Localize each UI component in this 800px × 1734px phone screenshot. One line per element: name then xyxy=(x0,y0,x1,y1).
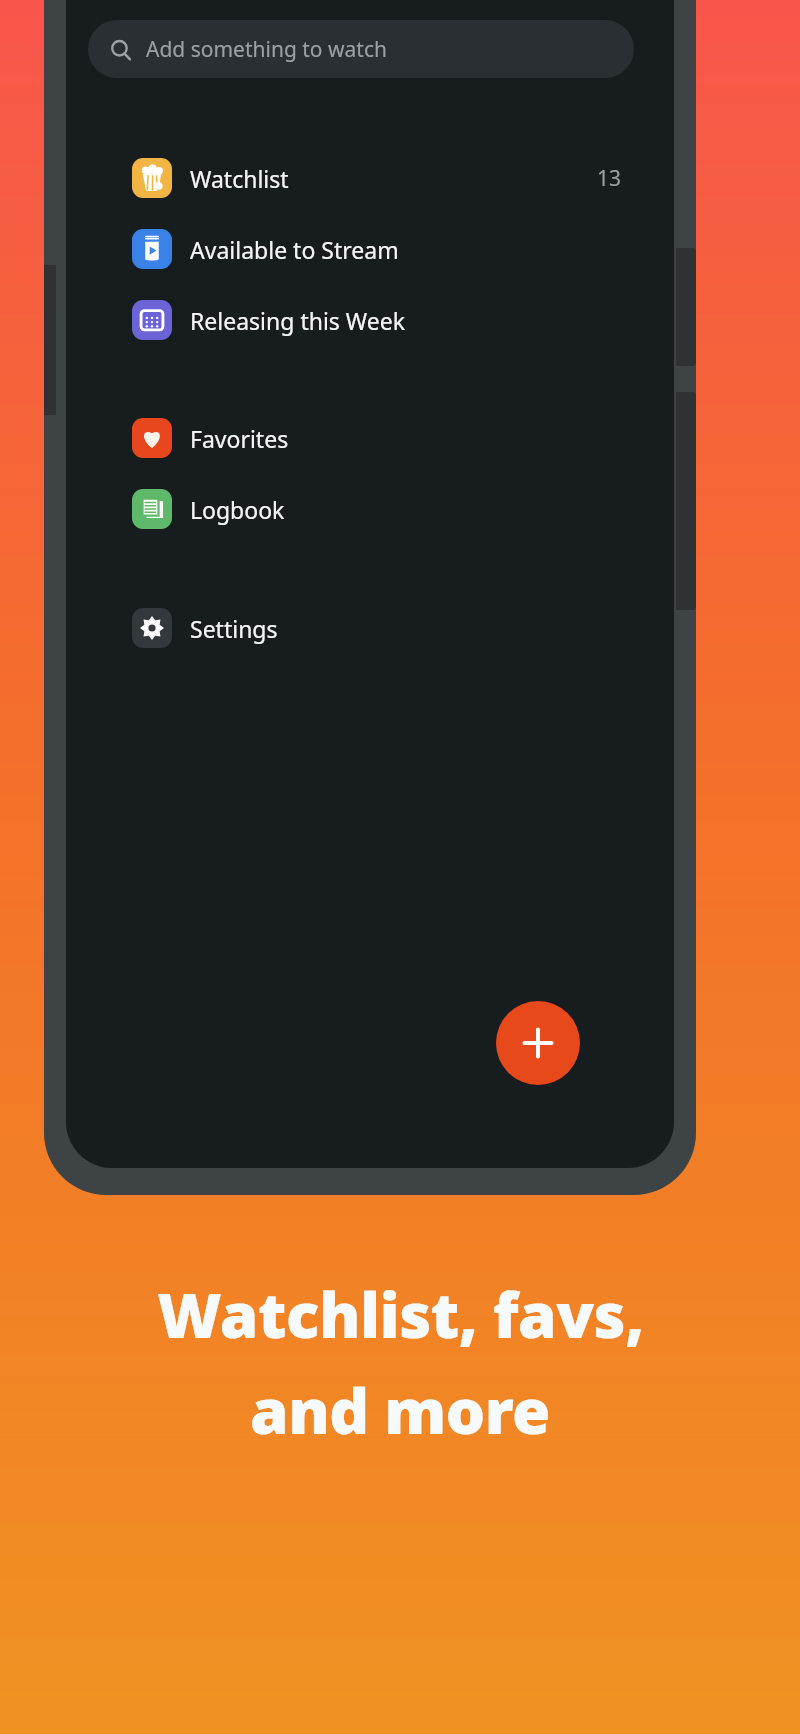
staticText: Available to Stream xyxy=(190,234,399,265)
staticText: Add something to watch xyxy=(146,35,387,64)
button[interactable]: Add xyxy=(496,1001,580,1085)
staticText: 13 xyxy=(597,164,622,193)
staticText: and more xyxy=(250,1368,550,1452)
staticText: Watchlist, favs, xyxy=(157,1272,644,1356)
button[interactable]: Favorites xyxy=(88,408,634,468)
staticText: Logbook xyxy=(190,494,285,525)
staticText: Favorites xyxy=(190,423,289,454)
staticText: Settings xyxy=(190,613,278,644)
staticText: Releasing this Week xyxy=(190,305,405,336)
staticText: Watchlist xyxy=(190,163,289,194)
button[interactable]: Add something to watch xyxy=(88,20,634,78)
button[interactable]: Available to Stream xyxy=(88,219,634,279)
button[interactable]: Watchlist xyxy=(88,148,634,208)
button[interactable]: Releasing this Week xyxy=(88,290,634,350)
button[interactable]: Settings xyxy=(88,598,634,658)
button[interactable]: Logbook xyxy=(88,479,634,539)
